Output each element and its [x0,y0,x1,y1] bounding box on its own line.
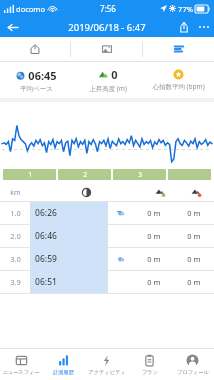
button[interactable]: 1 [3,169,56,180]
staticText: 06:51 [35,276,57,288]
staticText: 06:45 [28,68,57,83]
staticText: 3 [138,170,142,179]
button[interactable]: More options [194,17,214,37]
button[interactable]: プラン [128,349,171,380]
staticText: 計測履歴 [53,369,74,376]
button[interactable]: ニュースフィード [0,349,42,380]
staticText: 0 m [147,231,161,241]
staticText: 上昇高度 (m) [89,84,127,93]
staticText: 7:56 [100,3,116,14]
staticText: アクティビティ [88,369,126,376]
button[interactable]: 計測履歴 [42,349,85,380]
staticText: 0 [111,67,118,82]
staticText: 06:26 [35,207,57,219]
staticText: 3.9 [10,277,21,287]
staticText: 06:59 [35,253,57,265]
staticText: 2 [83,170,87,179]
staticText: 1.0 [10,208,21,218]
button[interactable]: 心拍数平均 (bpm) [143,62,214,98]
button[interactable]: Photos [71,37,142,61]
button[interactable]: Stats [143,37,214,61]
staticText: 06:46 [35,230,57,242]
staticText: プロフィール [177,369,209,376]
staticText: 0 m [187,208,201,218]
staticText: 0 m [147,254,161,264]
staticText: 2.0 [10,231,21,241]
staticText: 0 m [187,231,201,241]
button[interactable]: 1.0 [0,202,214,224]
staticText: 平均ペース [20,85,53,93]
button[interactable]: プロフィール [171,349,214,380]
staticText: 1 [28,170,32,179]
staticText: 0 m [147,277,161,287]
staticText: 3.0 [10,254,21,264]
button[interactable]: Route map [0,37,70,61]
staticText: 77% [178,4,193,14]
button[interactable]: 2.0 [0,225,214,247]
button[interactable]: Back [3,18,21,36]
staticText: 0 m [187,254,201,264]
staticText: 心拍数平均 (bpm) [152,82,205,91]
button[interactable]: アクティビティ [85,349,128,380]
staticText: 0 m [187,277,201,287]
button[interactable]: 2 [58,169,111,180]
button[interactable]: 06:45 [0,62,72,98]
staticText: ニュースフィード [0,369,42,376]
button[interactable]: 3.0 [0,248,214,270]
button[interactable]: Share [174,17,194,37]
staticText: docomo [16,4,45,14]
button[interactable]: 3 [113,169,166,180]
staticText: 2019/06/18 - 6:47 [68,21,146,34]
staticText: プラン [142,369,158,376]
button[interactable]: 0 [72,62,143,98]
staticText: km [10,188,21,198]
staticText: 0 m [147,208,161,218]
button[interactable]: 3.9 [0,271,214,293]
